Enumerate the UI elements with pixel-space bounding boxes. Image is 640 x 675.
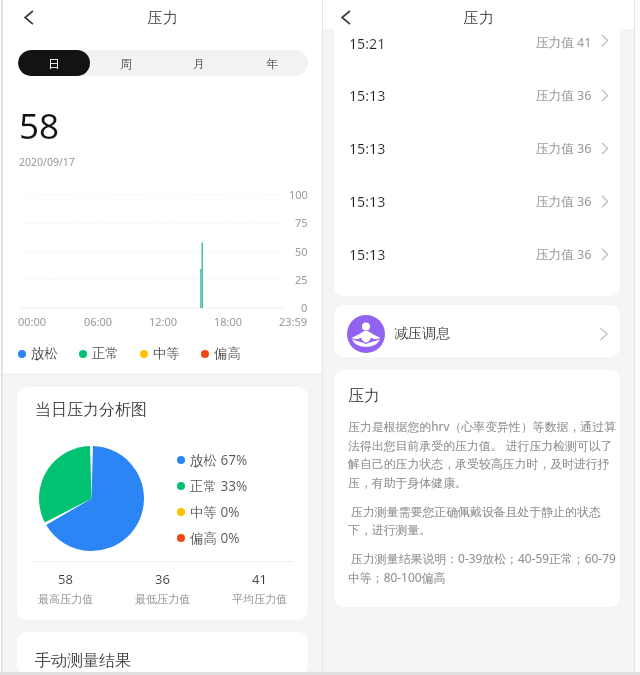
staticText: 压力	[348, 386, 380, 406]
staticText: 23:59	[279, 314, 308, 329]
staticText: 压力测量结果说明：0-39放松；40-59正常；60-79中等；80-100偏高	[348, 550, 620, 585]
staticText: 手动测量结果	[35, 651, 131, 671]
staticText: 15:13	[349, 139, 386, 158]
button[interactable]: 15:13	[349, 69, 609, 122]
button[interactable]: 日	[18, 50, 90, 76]
staticText: 中等	[153, 345, 180, 362]
button[interactable]: 15:13	[349, 122, 609, 175]
staticText: 压力值 36	[536, 87, 592, 104]
staticText: 2020/09/17	[19, 155, 75, 169]
button[interactable]: 年	[235, 50, 308, 76]
staticText: 压力	[147, 8, 178, 28]
staticText: 15:13	[349, 192, 386, 211]
staticText: 放松	[31, 345, 58, 362]
staticText: 100	[289, 187, 308, 202]
staticText: 最低压力值	[135, 592, 190, 606]
button[interactable]: 15:21	[349, 34, 609, 69]
staticText: 日	[48, 56, 60, 71]
button[interactable]: 月	[162, 50, 235, 76]
staticText: 12:00	[149, 314, 178, 329]
staticText: 压力值 41	[536, 34, 592, 51]
staticText: 偏高 0%	[190, 529, 240, 547]
staticText: 25	[295, 272, 308, 287]
button[interactable]: 周	[90, 50, 162, 76]
staticText: 最高压力值	[38, 592, 93, 606]
staticText: 减压调息	[394, 325, 450, 343]
staticText: 58	[58, 570, 73, 588]
staticText: 压力	[463, 8, 494, 28]
staticText: 年	[266, 56, 278, 71]
staticText: 41	[252, 570, 267, 588]
staticText: 36	[155, 570, 170, 588]
staticText: 15:13	[349, 245, 386, 264]
staticText: 放松 67%	[190, 451, 248, 469]
staticText: 正常 33%	[190, 477, 248, 495]
staticText: 00:00	[18, 314, 47, 329]
button[interactable]: 15:13	[349, 175, 609, 228]
staticText: 50	[295, 244, 308, 259]
staticText: 平均压力值	[232, 592, 287, 606]
staticText: 06:00	[84, 314, 113, 329]
staticText: 当日压力分析图	[35, 400, 147, 420]
staticText: 月	[193, 56, 205, 71]
staticText: 压力是根据您的hrv（心率变异性）等数据，通过算法得出您目前承受的压力值。 进行…	[348, 418, 620, 490]
staticText: 0	[301, 300, 308, 315]
button[interactable]: Back	[341, 10, 350, 25]
staticText: 正常	[92, 345, 119, 362]
staticText: 15:13	[349, 86, 386, 105]
staticText: 58	[19, 102, 60, 150]
staticText: 压力值 36	[536, 140, 592, 157]
staticText: 偏高	[214, 345, 241, 362]
staticText: 中等 0%	[190, 503, 240, 521]
staticText: 压力值 36	[536, 246, 592, 263]
button[interactable]: 减压调息	[334, 305, 620, 357]
staticText: 15:21	[349, 34, 386, 53]
staticText: 压力测量需要您正确佩戴设备且处于静止的状态下，进行测量。	[348, 503, 620, 537]
button[interactable]: Back	[24, 10, 33, 25]
button[interactable]: 15:13	[349, 228, 609, 281]
staticText: 18:00	[214, 314, 243, 329]
staticText: 压力值 36	[536, 193, 592, 210]
staticText: 周	[120, 56, 132, 71]
staticText: 75	[295, 215, 308, 230]
